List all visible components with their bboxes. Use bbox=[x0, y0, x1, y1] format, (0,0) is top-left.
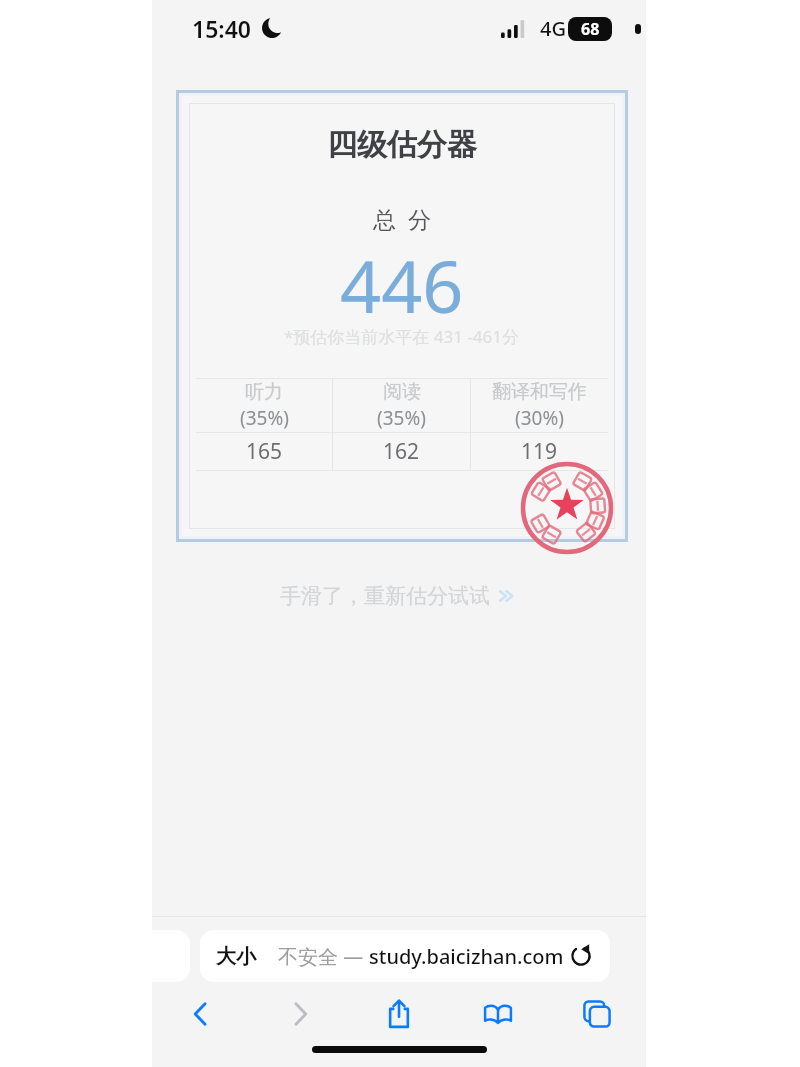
staticText: 68 bbox=[581, 18, 600, 40]
button[interactable]: Reload bbox=[568, 943, 594, 969]
button[interactable]: Share bbox=[349, 988, 448, 1040]
staticText: 总 分 bbox=[373, 203, 431, 234]
button[interactable]: Back bbox=[152, 988, 250, 1040]
staticText: (35%) bbox=[377, 405, 426, 431]
staticText: 听力 bbox=[245, 380, 283, 404]
staticText: (35%) bbox=[240, 405, 289, 431]
staticText: 翻译和写作 bbox=[492, 380, 587, 404]
button[interactable]: Tabs bbox=[547, 988, 646, 1040]
staticText: 4G bbox=[540, 15, 566, 42]
staticText: *预估你当前水平在 431 -461分 bbox=[284, 325, 520, 348]
staticText: (30%) bbox=[515, 405, 564, 431]
staticText: 大小 bbox=[216, 944, 256, 969]
staticText: study.baicizhan.com bbox=[369, 943, 564, 970]
staticText: 手滑了，重新估分试试 bbox=[280, 583, 490, 609]
staticText: 15:40 bbox=[192, 13, 251, 44]
staticText: 119 bbox=[521, 437, 558, 466]
button[interactable]: 手滑了，重新估分试试 bbox=[152, 578, 646, 614]
staticText: 165 bbox=[246, 437, 283, 466]
button[interactable]: Forward bbox=[250, 988, 349, 1040]
staticText: 162 bbox=[383, 437, 420, 466]
staticText: 不安全 — bbox=[278, 943, 369, 970]
button[interactable]: 大小 bbox=[216, 930, 594, 982]
staticText: 446 bbox=[340, 236, 464, 334]
staticText: 阅读 bbox=[383, 380, 421, 404]
staticText: 四级估分器 bbox=[327, 126, 477, 164]
button[interactable]: Bookmarks bbox=[448, 988, 547, 1040]
